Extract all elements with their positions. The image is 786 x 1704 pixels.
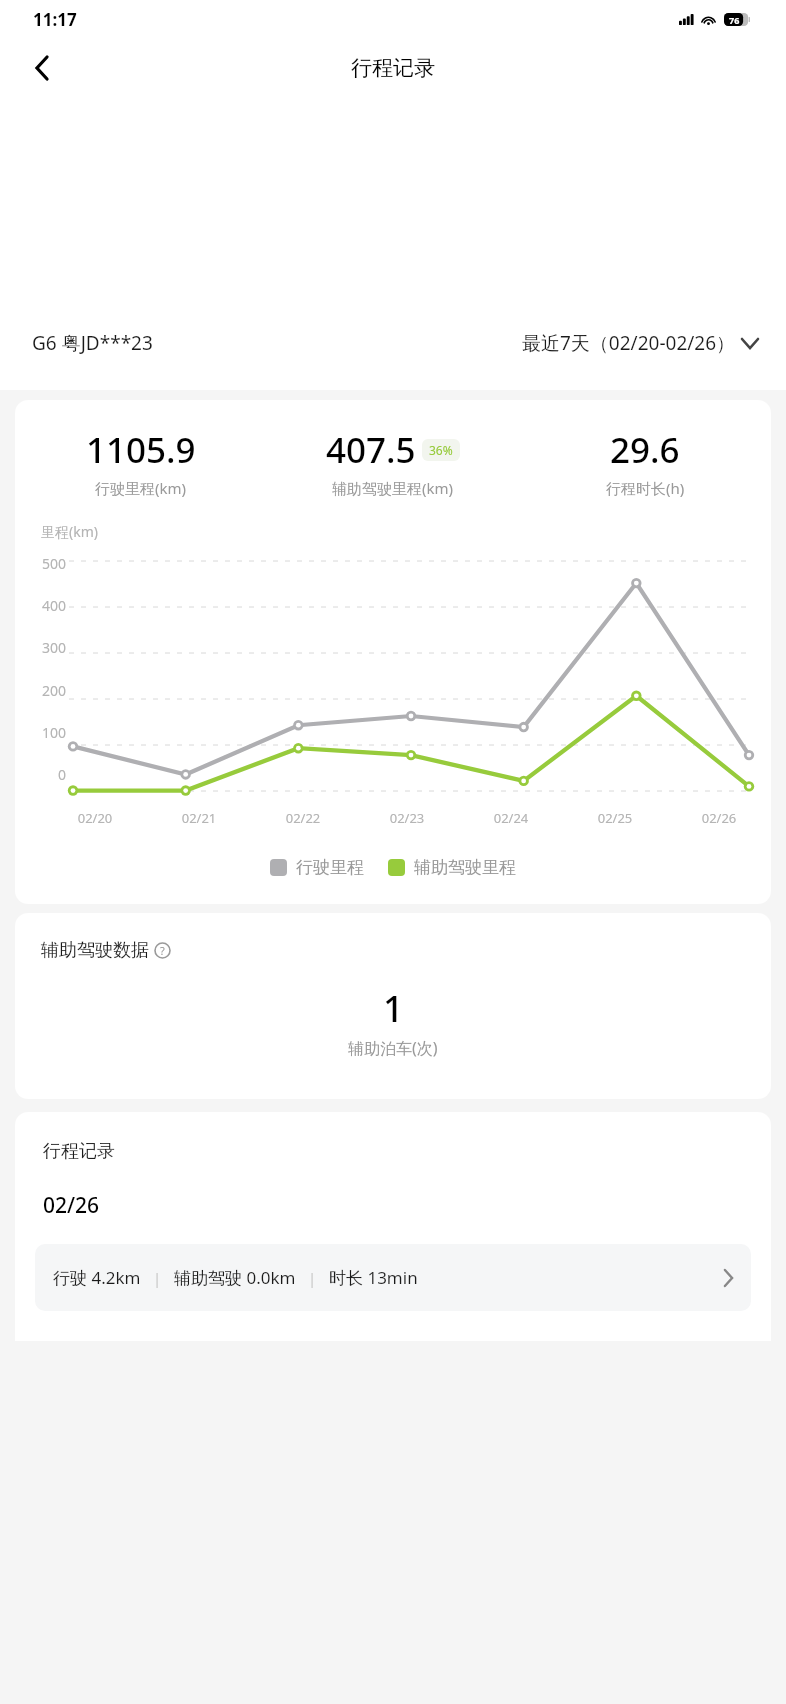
staticText: 行驶里程 (296, 857, 364, 878)
staticText: 300 (42, 638, 67, 657)
staticText: 02/25 (563, 809, 667, 827)
staticText: 行程记录 (43, 1140, 115, 1163)
staticText: 02/26 (667, 809, 771, 827)
staticText: 02/26 (43, 1191, 100, 1220)
staticText: 02/22 (251, 809, 355, 827)
staticText: 02/21 (147, 809, 251, 827)
staticText: 辅助泊车(次) (348, 1037, 438, 1059)
staticText: 407.5 (326, 426, 416, 474)
staticText: 500 (42, 554, 67, 573)
staticText: 400 (42, 596, 67, 615)
staticText: 最近7天（02/20-02/26） (522, 330, 736, 356)
staticText: 行程时长(h) (606, 478, 685, 498)
staticText: 时长 13min (329, 1266, 418, 1289)
staticText: 辅助驾驶 0.0km (174, 1266, 296, 1289)
staticText: 76 (729, 14, 740, 26)
staticText: 辅助驾驶里程(km) (332, 478, 454, 498)
staticText: 02/20 (43, 809, 147, 827)
staticText: G6 粤JD***23 (32, 330, 153, 356)
staticText: 1105.9 (86, 426, 196, 474)
staticText: 36% (429, 442, 453, 458)
staticText: 29.6 (610, 426, 680, 474)
staticText: 行程记录 (351, 55, 435, 81)
staticText: 里程(km) (41, 522, 98, 541)
button[interactable]: Back (18, 44, 66, 92)
staticText: 辅助驾驶里程 (414, 857, 516, 878)
staticText: ? (160, 943, 165, 958)
staticText: 行驶里程(km) (95, 478, 187, 498)
staticText: 200 (42, 681, 67, 700)
staticText: 行驶 4.2km (53, 1266, 141, 1289)
staticText: 02/24 (459, 809, 563, 827)
staticText: 0 (58, 765, 67, 784)
staticText: 100 (42, 723, 67, 742)
staticText: 02/23 (355, 809, 459, 827)
button[interactable]: 行驶 4.2km (35, 1244, 751, 1311)
staticText: 1 (383, 984, 404, 1033)
button[interactable]: 最近7天（02/20-02/26） (522, 330, 758, 356)
staticText: 11:17 (33, 8, 77, 31)
staticText: | (149, 1268, 166, 1288)
staticText: | (304, 1268, 321, 1288)
staticText: 辅助驾驶数据 (41, 939, 149, 962)
button[interactable]: Info (154, 942, 171, 959)
